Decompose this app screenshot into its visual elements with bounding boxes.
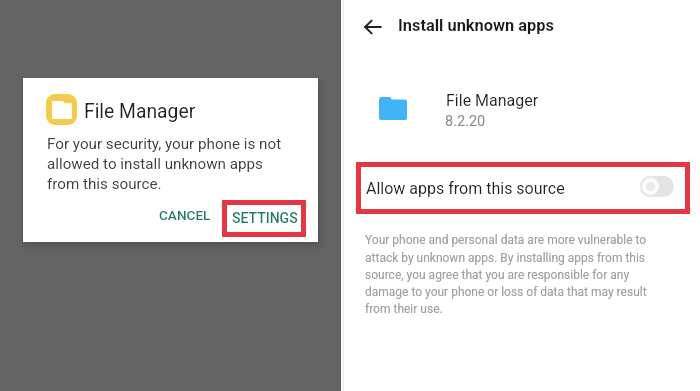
staticText: Allow apps from this source	[366, 179, 565, 198]
button[interactable]: Allow apps from this source toggle, off	[640, 176, 674, 197]
button[interactable]: Allow apps from this source	[356, 162, 689, 213]
staticText: File Manager	[84, 100, 196, 123]
staticText: 8.2.20	[445, 113, 486, 130]
staticText: File Manager	[446, 91, 539, 110]
staticText: Your phone and personal data are more vu…	[365, 233, 651, 316]
staticText: CANCEL	[159, 207, 211, 223]
staticText: SETTINGS	[232, 210, 298, 226]
button[interactable]: SETTINGS	[223, 200, 306, 236]
staticText: For your security, your phone is not all…	[47, 135, 287, 193]
button[interactable]: CANCEL	[152, 200, 217, 230]
staticText: Install unknown apps	[398, 16, 554, 35]
button[interactable]: Back	[364, 15, 388, 39]
